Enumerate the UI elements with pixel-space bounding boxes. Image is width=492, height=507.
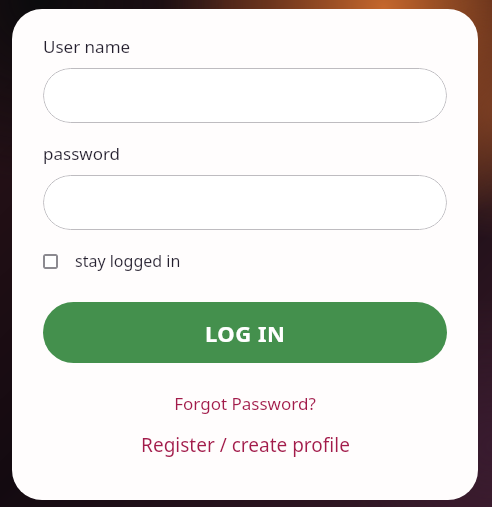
staticText: Forgot Password? [174,392,316,415]
button[interactable]: LOG IN [43,302,447,363]
staticText: stay logged in [75,250,181,272]
button[interactable] [43,175,447,230]
staticText: LOG IN [205,318,286,348]
staticText: User name [43,35,131,58]
button[interactable] [43,68,447,123]
button[interactable]: Forgot Password? [43,389,447,418]
staticText: Register / create profile [141,432,350,458]
staticText: password [43,142,121,165]
button[interactable]: stay logged in [43,248,187,274]
button[interactable]: Register / create profile [43,429,447,461]
